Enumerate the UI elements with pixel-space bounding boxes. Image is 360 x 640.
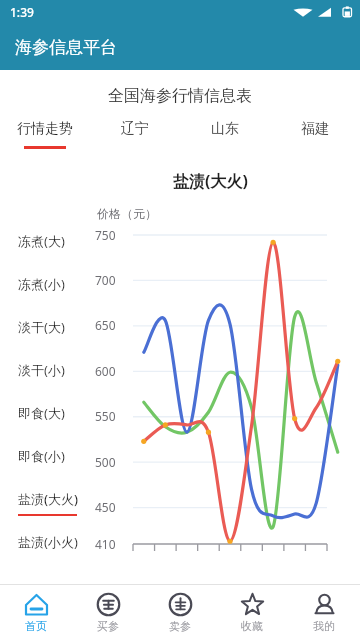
staticText: 冻煮(大) — [18, 232, 65, 250]
button[interactable]: 买参 — [72, 585, 144, 640]
button[interactable]: 行情走势 — [0, 120, 90, 156]
staticText: 收藏 — [241, 619, 263, 633]
staticText: 全国海参行情信息表 — [108, 86, 252, 106]
staticText: 1:39 — [10, 4, 34, 20]
staticText: 410 — [95, 536, 116, 552]
button[interactable]: 辽宁 — [90, 120, 180, 156]
staticText: 600 — [95, 363, 116, 379]
button[interactable]: 福建 — [270, 120, 360, 156]
staticText: 即食(小) — [18, 447, 65, 465]
staticText: 650 — [95, 317, 116, 333]
staticText: 盐渍(小火) — [18, 533, 78, 551]
button[interactable]: 收藏 — [216, 585, 288, 640]
button[interactable]: 山东 — [180, 120, 270, 156]
button[interactable]: 盐渍(小火) — [0, 533, 95, 576]
staticText: 即食(大) — [18, 404, 65, 422]
staticText: 山东 — [211, 120, 239, 138]
staticText: 550 — [95, 408, 116, 424]
button[interactable]: 卖参 — [144, 585, 216, 640]
button[interactable]: 淡干(大) — [0, 318, 95, 361]
staticText: 首页 — [25, 619, 47, 633]
button[interactable]: 即食(大) — [0, 404, 95, 447]
button[interactable]: 冻煮(小) — [0, 275, 95, 318]
staticText: 买参 — [97, 619, 119, 633]
staticText: 福建 — [301, 120, 329, 138]
button[interactable]: 盐渍(大火) — [0, 490, 95, 533]
staticText: 450 — [95, 499, 116, 515]
staticText: 500 — [95, 454, 116, 470]
button[interactable]: 淡干(小) — [0, 361, 95, 404]
staticText: 海参信息平台 — [15, 37, 117, 58]
staticText: 盐渍(大火) — [18, 490, 79, 508]
staticText: 冻煮(小) — [18, 275, 65, 293]
staticText: 价格（元） — [97, 206, 157, 221]
staticText: 淡干(大) — [18, 318, 65, 336]
staticText: 卖参 — [169, 619, 191, 633]
staticText: 淡干(小) — [18, 361, 65, 379]
staticText: 700 — [95, 272, 116, 288]
staticText: 我的 — [313, 619, 335, 633]
button[interactable]: 首页 — [0, 585, 72, 640]
button[interactable]: 冻煮(大) — [0, 232, 95, 275]
button[interactable]: 即食(小) — [0, 447, 95, 490]
staticText: 行情走势 — [17, 120, 73, 138]
staticText: 盐渍(大火) — [95, 170, 326, 192]
staticText: 辽宁 — [121, 120, 149, 138]
button[interactable]: 我的 — [288, 585, 360, 640]
staticText: 750 — [95, 227, 116, 243]
